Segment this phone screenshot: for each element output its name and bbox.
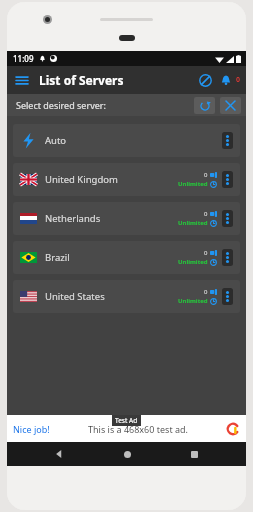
- button[interactable]: Refresh server list: [194, 97, 215, 114]
- button[interactable]: United Kingdom: [13, 163, 240, 196]
- staticText: 11:09: [13, 53, 34, 64]
- staticText: This is a 468x60 test ad.: [88, 423, 188, 435]
- button[interactable]: Home: [112, 442, 142, 466]
- staticText: 0: [204, 249, 208, 257]
- staticText: Auto: [45, 134, 67, 147]
- button[interactable]: Open navigation menu: [12, 70, 32, 90]
- staticText: List of Servers: [39, 72, 124, 88]
- button[interactable]: Back: [44, 442, 74, 466]
- button[interactable]: Ad info: [226, 422, 240, 436]
- staticText: 0: [204, 288, 208, 296]
- button[interactable]: More options for United Kingdom: [222, 171, 233, 188]
- staticText: 0: [204, 210, 208, 218]
- staticText: Unlimited: [178, 258, 208, 266]
- button[interactable]: Clear: [220, 97, 241, 114]
- button[interactable]: United States: [13, 280, 240, 313]
- staticText: United States: [45, 290, 105, 303]
- button[interactable]: More options for Brazil: [222, 249, 233, 266]
- staticText: United Kingdom: [45, 173, 118, 186]
- button[interactable]: Notifications: [216, 70, 236, 90]
- button[interactable]: Recent apps: [179, 442, 209, 466]
- button[interactable]: Brazil: [13, 241, 240, 274]
- button[interactable]: More options for United States: [222, 288, 233, 305]
- button[interactable]: VPN disconnected: [194, 69, 216, 91]
- staticText: 0: [236, 75, 241, 85]
- staticText: Select desired server:: [16, 99, 106, 111]
- button[interactable]: More options for Netherlands: [222, 210, 233, 227]
- staticText: 0: [204, 171, 208, 179]
- button[interactable]: Auto: [13, 124, 240, 157]
- staticText: Test Ad: [115, 416, 138, 425]
- staticText: Unlimited: [178, 180, 208, 188]
- button[interactable]: Nice job!: [13, 423, 50, 435]
- button[interactable]: More options for Auto: [222, 132, 233, 149]
- staticText: Netherlands: [45, 212, 101, 225]
- button[interactable]: Netherlands: [13, 202, 240, 235]
- staticText: Brazil: [45, 251, 70, 264]
- staticText: Unlimited: [178, 219, 208, 227]
- staticText: Unlimited: [178, 297, 208, 305]
